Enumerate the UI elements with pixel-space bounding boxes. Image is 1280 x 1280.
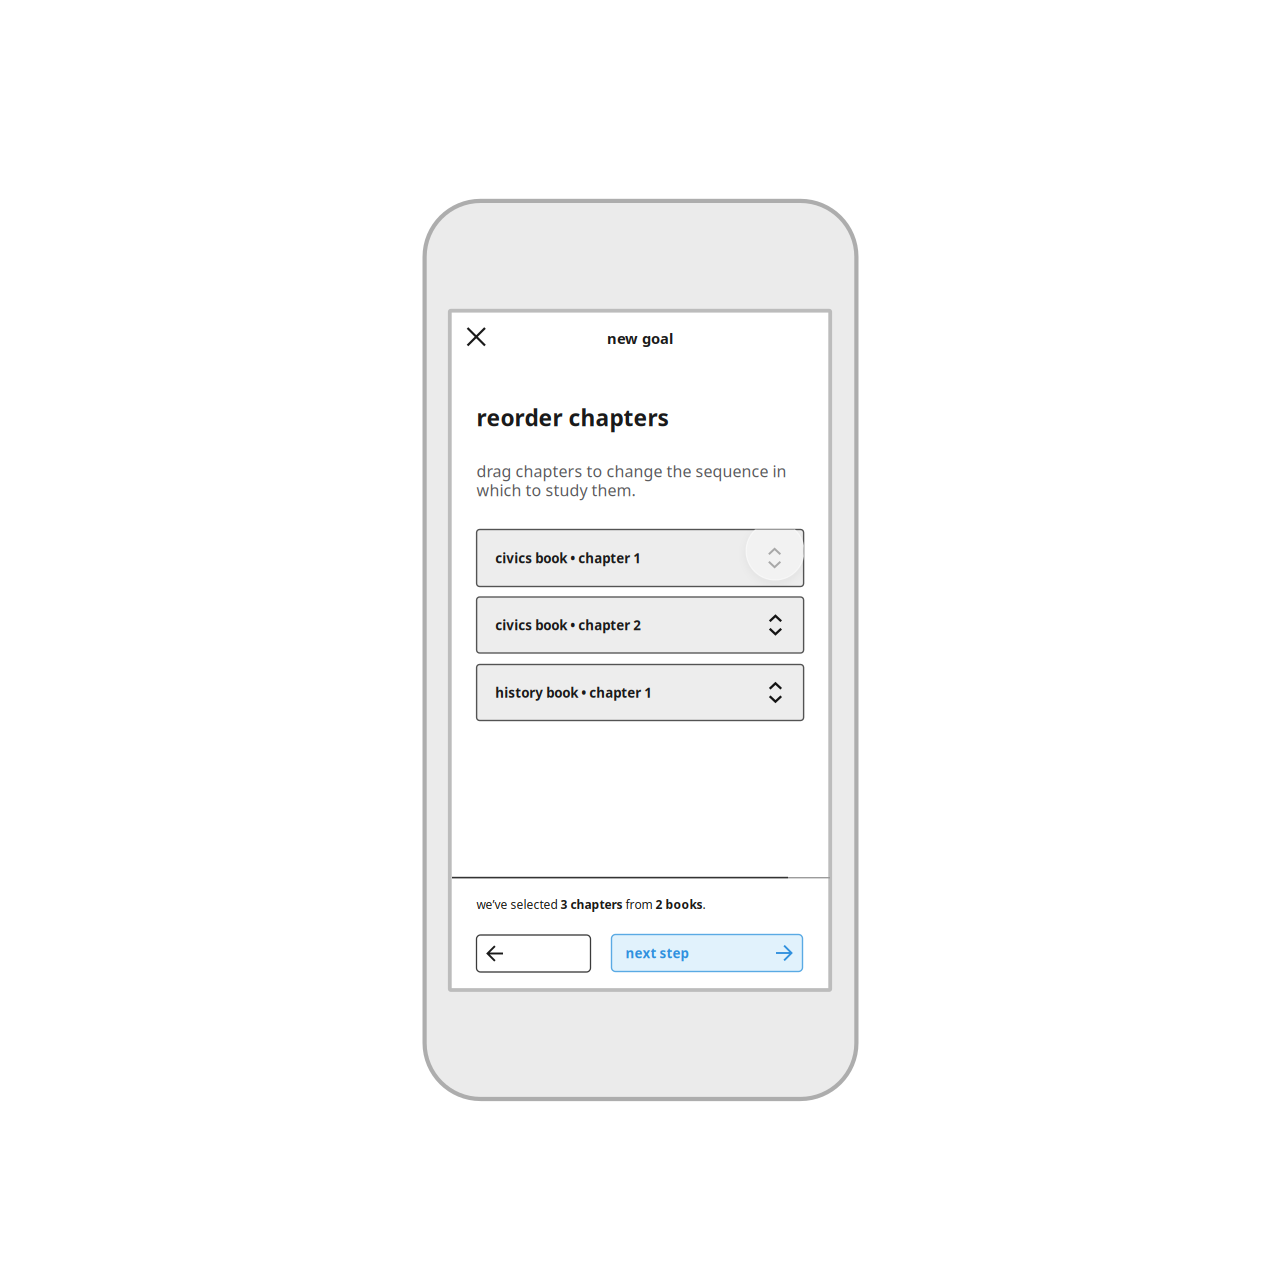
staticText: history book • chapter 1 [495, 684, 652, 701]
staticText: next step [625, 944, 688, 962]
staticText: drag chapters to change the sequence in … [477, 460, 787, 501]
button[interactable]: next step [611, 934, 802, 971]
button[interactable]: Back [476, 935, 590, 972]
button[interactable]: civics book • chapter 2 [477, 597, 804, 653]
button[interactable]: Close [467, 328, 485, 345]
staticText: new goal [607, 328, 673, 348]
staticText: civics book • chapter 1 [495, 549, 641, 567]
staticText: reorder chapters [477, 402, 669, 433]
button[interactable]: history book • chapter 1 [477, 664, 804, 720]
staticText: civics book • chapter 2 [495, 616, 641, 634]
button[interactable]: civics book • chapter 1 [477, 529, 804, 586]
staticText: we’ve selected 3 chapters from 2 books. [477, 896, 706, 912]
